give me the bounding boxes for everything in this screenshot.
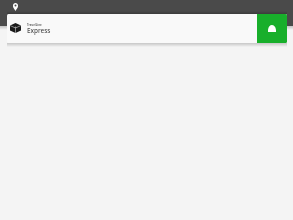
button[interactable]: Room service	[257, 14, 287, 43]
button[interactable]: Location	[13, 3, 18, 11]
button[interactable]: TravelLine	[7, 14, 287, 43]
staticText: TravelLine	[27, 23, 42, 27]
staticText: Express	[27, 26, 51, 35]
